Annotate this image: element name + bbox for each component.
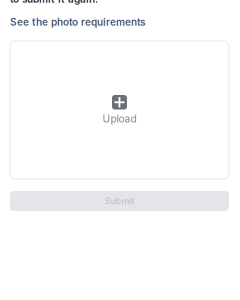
button[interactable]: See the photo requirements (10, 16, 145, 26)
staticText: See the photo requirements (10, 16, 145, 28)
staticText: to submit it again. (10, 0, 98, 5)
button[interactable]: Upload (10, 41, 229, 179)
button[interactable]: Submit (10, 191, 229, 211)
staticText: Upload (102, 113, 136, 125)
staticText: Submit (104, 195, 134, 206)
